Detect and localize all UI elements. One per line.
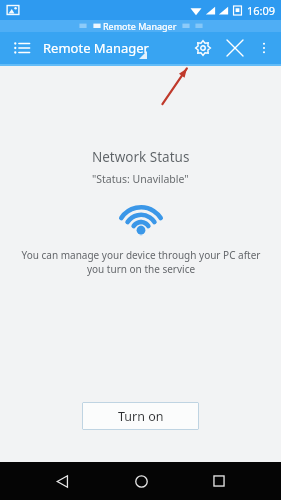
staticText: You can manage your device through your …	[21, 248, 261, 276]
staticText: Remote Manager	[43, 39, 149, 57]
button[interactable]: Menu	[8, 34, 36, 62]
staticText: Network Status	[92, 148, 190, 166]
button[interactable]: Close	[219, 32, 251, 64]
staticText: "Status: Unavilable"	[92, 172, 189, 186]
button[interactable]: Settings	[187, 32, 219, 64]
staticText: Remote Manager	[103, 20, 177, 32]
staticText: Turn on	[118, 408, 164, 425]
button[interactable]: Turn on	[82, 402, 199, 430]
button[interactable]: Back	[45, 464, 79, 498]
button[interactable]: Recents	[202, 464, 236, 498]
staticText: 16:09	[247, 3, 276, 18]
button[interactable]: Home	[124, 464, 158, 498]
button[interactable]: More options	[251, 35, 277, 61]
